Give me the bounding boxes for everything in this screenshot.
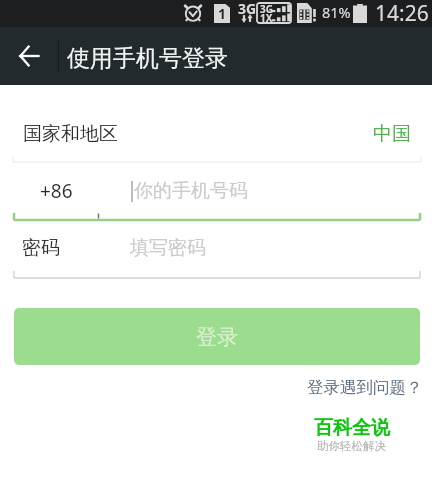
button[interactable]: 登录: [14, 308, 420, 365]
button[interactable]: 国家和地区: [0, 114, 432, 154]
staticText: 填写密码: [130, 236, 206, 260]
staticText: 3G: [238, 0, 257, 18]
staticText: 14:26: [375, 0, 429, 26]
staticText: 助你轻松解决: [317, 439, 386, 453]
staticText: 百科全说: [314, 416, 390, 440]
button[interactable]: 登录遇到问题？: [307, 377, 423, 398]
staticText: 使用手机号登录: [67, 44, 228, 73]
staticText: 3G: [260, 2, 273, 16]
button[interactable]: Back: [0, 27, 58, 85]
staticText: 登录遇到问题？: [307, 377, 423, 398]
staticText: 国家和地区: [23, 122, 118, 146]
staticText: 登录: [196, 324, 238, 350]
staticText: 1X: [260, 11, 273, 25]
staticText: 中国: [373, 122, 411, 146]
button[interactable]: +86: [0, 171, 432, 211]
staticText: 81%: [322, 2, 351, 22]
button[interactable]: 密码: [0, 228, 432, 268]
staticText: 密码: [22, 236, 60, 260]
staticText: 1: [218, 4, 227, 23]
staticText: 你的手机号码: [134, 179, 248, 203]
staticText: +86: [40, 178, 73, 204]
